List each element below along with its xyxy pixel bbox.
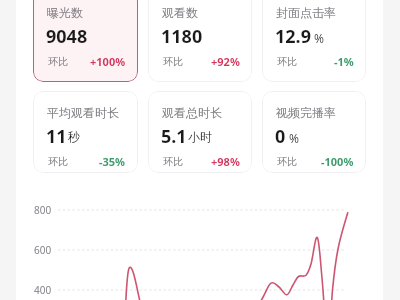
staticText: 5.1 [161,124,187,149]
staticText: -35% [99,154,126,169]
staticText: 1180 [161,24,203,49]
staticText: 0 [275,124,286,149]
staticText: +100% [90,54,126,69]
other: Trend chart [16,182,383,300]
staticText: 环比 [277,55,297,68]
staticText: 800 [34,203,52,217]
staticText: 环比 [48,155,68,168]
staticText: 环比 [163,155,183,168]
button[interactable]: 平均观看时长 [33,91,138,173]
staticText: 秒 [68,129,80,144]
button[interactable]: 视频完播率 [262,91,366,173]
staticText: -1% [334,54,354,69]
button[interactable]: 曝光数 [33,0,138,82]
staticText: 环比 [48,55,68,68]
button[interactable]: 观看数 [148,0,252,82]
staticText: -100% [321,154,354,169]
staticText: 小时 [188,129,212,144]
staticText: 11 [46,124,67,149]
staticText: % [314,30,324,46]
staticText: 12.9 [275,24,311,49]
staticText: 视频完播率 [276,105,336,120]
staticText: 观看总时长 [162,105,222,120]
staticText: 400 [34,283,52,297]
staticText: 9048 [46,24,88,49]
staticText: 曝光数 [47,5,83,20]
staticText: 环比 [277,155,297,168]
staticText: 600 [34,243,52,257]
staticText: % [289,130,299,146]
staticText: +98% [211,154,240,169]
staticText: 观看数 [162,5,198,20]
staticText: +92% [211,54,240,69]
button[interactable]: 观看总时长 [148,91,252,173]
button[interactable]: 封面点击率 [262,0,366,82]
staticText: 环比 [163,55,183,68]
staticText: 封面点击率 [276,5,336,20]
staticText: 平均观看时长 [47,105,119,120]
